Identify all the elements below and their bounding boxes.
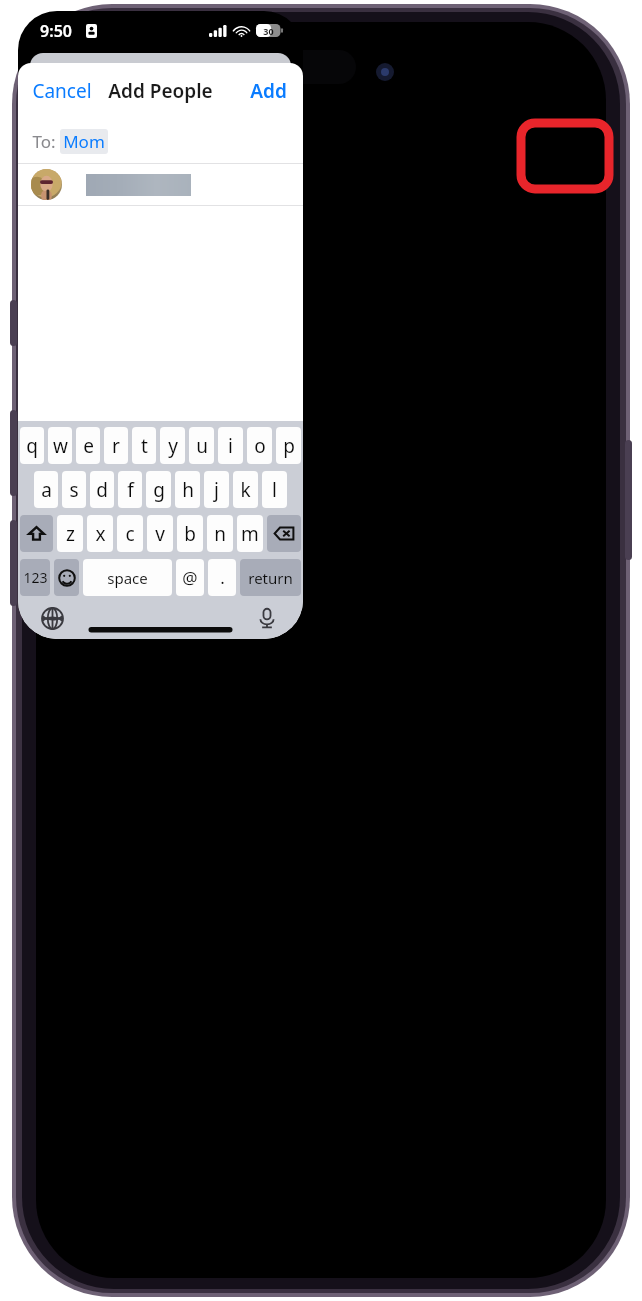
staticText: b: [184, 521, 196, 547]
staticText: o: [254, 433, 266, 459]
staticText: Mom: [63, 130, 105, 153]
staticText: u: [196, 433, 208, 459]
button[interactable]: .: [208, 559, 236, 596]
button[interactable]: o: [247, 427, 272, 464]
button[interactable]: s: [62, 471, 86, 508]
button[interactable]: v: [147, 515, 173, 552]
staticText: w: [53, 433, 68, 459]
staticText: Add People: [108, 78, 213, 104]
button[interactable]: r: [104, 427, 128, 464]
button[interactable]: j: [204, 471, 229, 508]
button[interactable]: Cancel: [18, 70, 106, 112]
staticText: Add: [250, 78, 287, 104]
staticText: e: [83, 433, 94, 459]
staticText: d: [96, 477, 108, 503]
staticText: r: [112, 433, 120, 459]
button[interactable]: a: [34, 471, 58, 508]
button[interactable]: w: [48, 427, 72, 464]
staticText: m: [241, 521, 259, 547]
button[interactable]: t: [132, 427, 156, 464]
staticText: c: [125, 521, 135, 547]
button[interactable]: i: [218, 427, 243, 464]
button[interactable]: q: [20, 427, 44, 464]
staticText: space: [107, 568, 148, 588]
staticText: i: [228, 433, 233, 459]
button[interactable]: z: [57, 515, 83, 552]
button[interactable]: Emoji: [54, 559, 79, 596]
button[interactable]: d: [90, 471, 114, 508]
button[interactable]: b: [177, 515, 203, 552]
staticText: s: [69, 477, 79, 503]
staticText: 9:50: [40, 20, 72, 42]
button[interactable]: n: [207, 515, 233, 552]
button[interactable]: x: [87, 515, 113, 552]
staticText: v: [155, 521, 165, 547]
staticText: y: [168, 433, 178, 459]
staticText: To:: [32, 130, 56, 153]
button[interactable]: m: [237, 515, 263, 552]
staticText: 123: [23, 568, 48, 587]
staticText: .: [220, 566, 225, 589]
button[interactable]: return: [240, 559, 301, 596]
button[interactable]: l: [262, 471, 287, 508]
button[interactable]: Change keyboard: [36, 602, 68, 634]
button[interactable]: 123: [20, 559, 50, 596]
button[interactable]: e: [76, 427, 100, 464]
staticText: a: [41, 477, 52, 503]
staticText: return: [248, 568, 293, 588]
staticText: g: [153, 477, 165, 503]
staticText: 30: [263, 25, 274, 37]
button[interactable]: p: [276, 427, 301, 464]
staticText: j: [214, 477, 219, 503]
button[interactable]: f: [118, 471, 142, 508]
staticText: k: [240, 477, 251, 503]
staticText: t: [141, 433, 148, 459]
button[interactable]: g: [146, 471, 171, 508]
staticText: p: [283, 433, 295, 459]
button[interactable]: Backspace: [267, 515, 301, 552]
staticText: x: [95, 521, 106, 547]
button[interactable]: h: [175, 471, 200, 508]
button[interactable]: u: [189, 427, 214, 464]
button[interactable]: @: [176, 559, 204, 596]
button[interactable]: Add: [234, 70, 303, 112]
button[interactable]: y: [160, 427, 185, 464]
staticText: n: [214, 521, 226, 547]
button[interactable]: Shift: [20, 515, 53, 552]
button[interactable]: space: [83, 559, 172, 596]
button[interactable]: Mom: [60, 129, 108, 154]
button[interactable]: k: [233, 471, 258, 508]
button[interactable]: Dictate: [251, 602, 283, 634]
button[interactable]: [18, 164, 303, 205]
button[interactable]: c: [117, 515, 143, 552]
staticText: h: [182, 477, 194, 503]
staticText: @: [182, 566, 198, 589]
staticText: f: [127, 477, 134, 503]
staticText: Cancel: [32, 78, 92, 104]
staticText: z: [66, 521, 75, 547]
staticText: q: [26, 433, 38, 459]
staticText: l: [272, 477, 277, 503]
